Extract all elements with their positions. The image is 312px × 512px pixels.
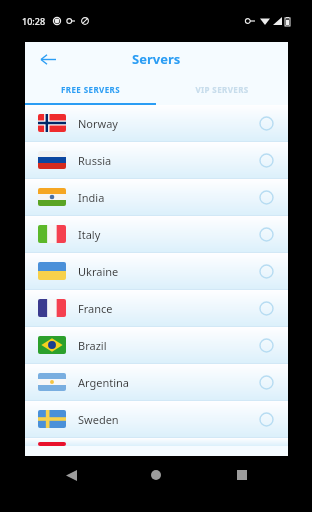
button[interactable]: FREE SERVERS	[25, 75, 156, 103]
staticText: Argentina	[78, 375, 130, 390]
button[interactable]: Ukraine	[25, 253, 288, 290]
button[interactable]: Back	[35, 46, 61, 72]
staticText: Sweden	[78, 412, 119, 427]
button[interactable]: Brazil	[25, 327, 288, 364]
button[interactable]: Back	[56, 460, 86, 490]
staticText: Servers	[132, 50, 181, 68]
staticText: 10:28	[22, 15, 46, 27]
button[interactable]: Russia	[25, 142, 288, 179]
button[interactable]: France	[25, 290, 288, 327]
staticText: Italy	[78, 227, 101, 242]
staticText: France	[78, 301, 113, 316]
staticText: VIP SERVERS	[195, 84, 249, 95]
button[interactable]: Recents	[227, 460, 257, 490]
staticText: Brazil	[78, 338, 107, 353]
staticText: Norway	[78, 116, 118, 131]
button[interactable]: Argentina	[25, 364, 288, 401]
button[interactable]: Home	[141, 460, 171, 490]
staticText: Ukraine	[78, 264, 119, 279]
staticText: India	[78, 190, 105, 205]
staticText: Russia	[78, 153, 112, 168]
button[interactable]: Norway	[25, 105, 288, 142]
button[interactable]: Italy	[25, 216, 288, 253]
button[interactable]: Sweden	[25, 401, 288, 438]
button[interactable]: India	[25, 179, 288, 216]
staticText: FREE SERVERS	[61, 84, 120, 95]
button[interactable]: VIP SERVERS	[156, 75, 288, 103]
